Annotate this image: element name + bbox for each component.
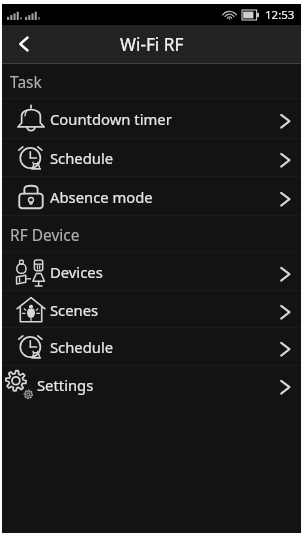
staticText: Task (10, 71, 42, 92)
staticText: Wi-Fi RF (120, 33, 184, 56)
button[interactable]: Schedule (2, 139, 301, 177)
button[interactable]: Scenes (2, 291, 301, 328)
button[interactable]: Absence mode (2, 177, 301, 216)
staticText: Settings (37, 375, 94, 395)
button[interactable]: Countdown timer (2, 99, 301, 139)
staticText: Devices (50, 262, 103, 282)
staticText: Schedule (50, 337, 114, 357)
staticText: RF Device (10, 224, 80, 245)
staticText: Countdown timer (50, 109, 172, 129)
button[interactable]: Devices (2, 252, 301, 291)
staticText: 12:53 (265, 7, 295, 23)
staticText: Absence mode (50, 187, 153, 207)
staticText: Scenes (50, 300, 99, 320)
button[interactable]: Back (2, 25, 46, 63)
button[interactable]: Schedule (2, 328, 301, 366)
staticText: Schedule (50, 148, 114, 168)
button[interactable]: Settings (2, 366, 301, 404)
